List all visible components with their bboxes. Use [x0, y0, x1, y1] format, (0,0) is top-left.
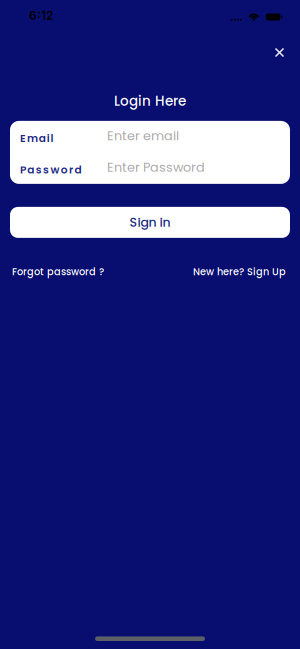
staticText: r [69, 162, 73, 177]
staticText: l [51, 131, 54, 146]
staticText: Enter Password [107, 158, 205, 176]
staticText: 6:12 [29, 8, 53, 23]
staticText: Sign in [129, 214, 170, 231]
staticText: E [20, 131, 26, 146]
staticText: i [47, 131, 50, 146]
staticText: m [27, 131, 38, 146]
staticText: s [43, 162, 49, 177]
staticText: d [74, 162, 81, 177]
staticText: Forgot password ? [12, 265, 104, 278]
staticText: New here? Sign Up [193, 265, 286, 278]
staticText: P [20, 162, 26, 177]
staticText: a [39, 131, 46, 146]
staticText: a [27, 162, 34, 177]
staticText: w [50, 162, 59, 177]
staticText: Enter email [107, 127, 179, 145]
staticText: Login Here [114, 91, 186, 110]
staticText: o [61, 162, 68, 177]
staticText: s [36, 162, 42, 177]
